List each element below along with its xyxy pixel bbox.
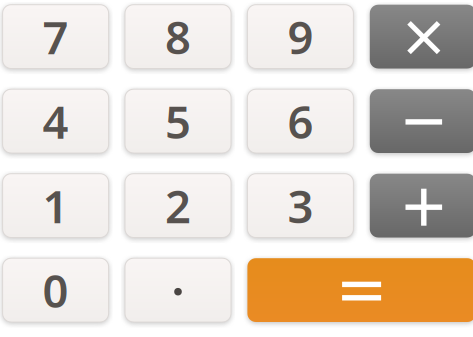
button[interactable]: 0 xyxy=(3,258,109,322)
button[interactable]: 1 xyxy=(3,174,109,237)
staticText: 1 xyxy=(43,175,69,236)
staticText: 2 xyxy=(165,175,191,236)
button[interactable]: 4 xyxy=(3,89,109,153)
staticText: 9 xyxy=(287,6,313,67)
button[interactable]: 7 xyxy=(3,5,109,68)
staticText: 6 xyxy=(287,91,313,151)
staticText: 7 xyxy=(43,6,69,67)
button[interactable]: Subtract xyxy=(370,89,473,153)
button[interactable]: 9 xyxy=(247,5,353,68)
button[interactable]: 2 xyxy=(125,174,231,237)
button[interactable]: 8 xyxy=(125,5,231,68)
button[interactable]: Decimal point xyxy=(125,258,231,322)
button[interactable]: 3 xyxy=(247,174,353,237)
button[interactable]: Equals xyxy=(247,258,473,322)
button[interactable]: Multiply xyxy=(370,5,473,68)
staticText: 3 xyxy=(287,175,313,236)
staticText: 4 xyxy=(43,91,69,151)
staticText: 8 xyxy=(165,6,191,67)
button[interactable]: 5 xyxy=(125,89,231,153)
button[interactable]: 6 xyxy=(247,89,353,153)
staticText: 0 xyxy=(43,260,69,320)
staticText: 5 xyxy=(165,91,191,151)
button[interactable]: Add xyxy=(370,174,473,237)
